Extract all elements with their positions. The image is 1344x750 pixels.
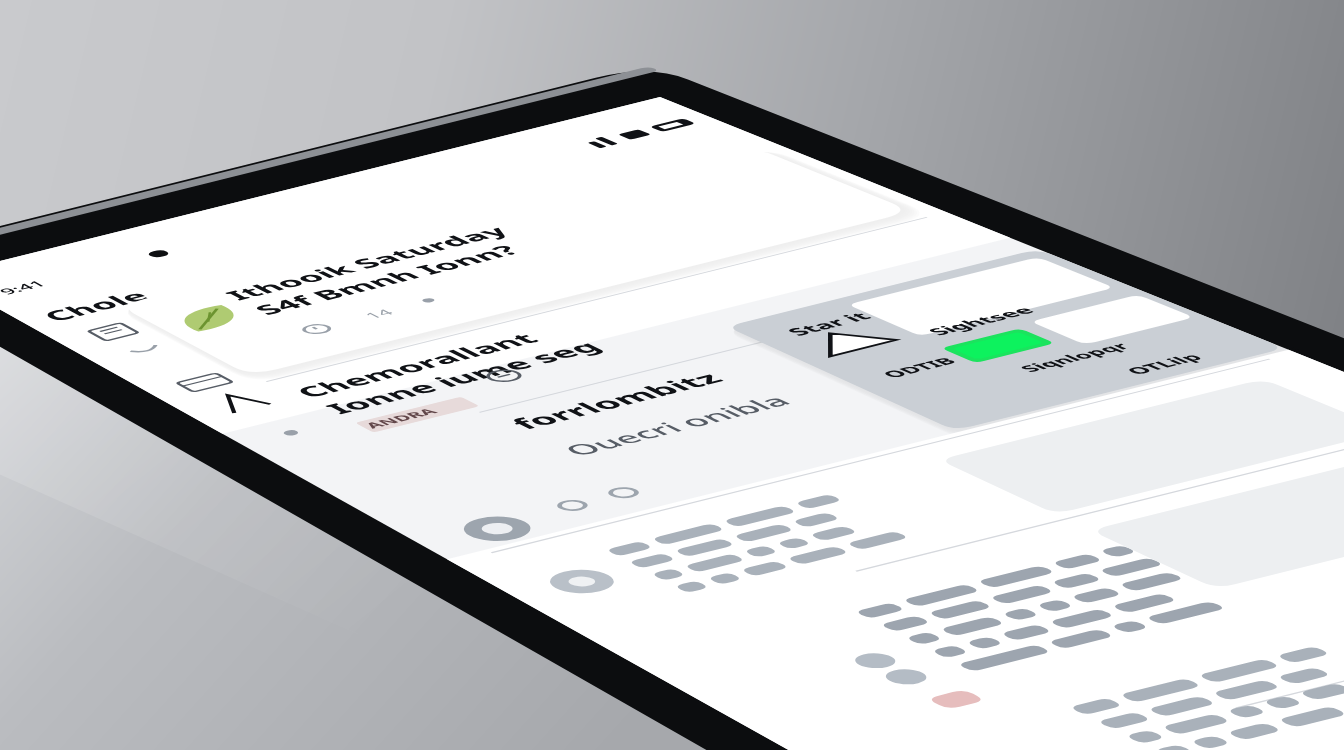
button[interactable]: Phone showing an inbox app screen	[0, 0, 1344, 750]
